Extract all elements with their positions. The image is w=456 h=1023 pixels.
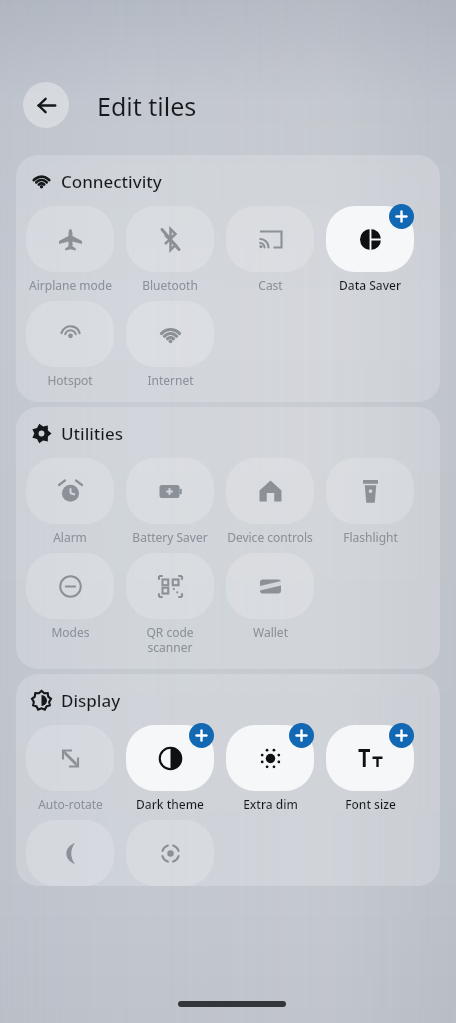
staticText: Cast [258, 277, 283, 293]
button[interactable]: Device controls [220, 458, 320, 545]
button[interactable]: Bluetooth [120, 206, 220, 293]
staticText: Edit tiles [97, 89, 197, 123]
staticText: Connectivity [61, 170, 162, 193]
staticText: Data Saver [339, 277, 401, 293]
staticText: Font size [345, 796, 396, 812]
staticText: QR code scanner [146, 624, 194, 655]
staticText: Wallet [253, 624, 288, 640]
button[interactable]: Wallet [220, 553, 320, 640]
staticText: Auto-rotate [38, 796, 103, 812]
staticText: Utilities [61, 422, 123, 445]
button[interactable]: Data Saver [320, 206, 420, 293]
button[interactable]: Alarm [20, 458, 120, 545]
button[interactable]: Hotspot [20, 301, 120, 388]
staticText: Extra dim [243, 796, 298, 812]
button[interactable]: Extra dim [220, 725, 320, 812]
staticText: Hotspot [47, 372, 93, 388]
button[interactable]: Auto-rotate [20, 725, 120, 812]
button[interactable] [20, 820, 120, 886]
staticText: Alarm [53, 529, 87, 545]
button[interactable]: Font size [320, 725, 420, 812]
button[interactable]: Cast [220, 206, 320, 293]
button[interactable] [120, 820, 220, 886]
button[interactable]: Battery Saver [120, 458, 220, 545]
button[interactable]: Internet [120, 301, 220, 388]
staticText: Modes [51, 624, 90, 640]
staticText: Internet [147, 372, 194, 388]
button[interactable]: QR code scanner [120, 553, 220, 655]
staticText: Flashlight [343, 529, 398, 545]
staticText: Battery Saver [132, 529, 208, 545]
button[interactable]: Modes [20, 553, 120, 640]
staticText: Device controls [227, 529, 313, 545]
button[interactable]: Airplane mode [20, 206, 120, 293]
staticText: Display [61, 689, 121, 712]
staticText: Bluetooth [142, 277, 198, 293]
button[interactable]: Flashlight [320, 458, 420, 545]
staticText: Airplane mode [29, 277, 112, 293]
button[interactable]: Back [23, 82, 69, 128]
staticText: Dark theme [136, 796, 204, 812]
button[interactable]: Dark theme [120, 725, 220, 812]
